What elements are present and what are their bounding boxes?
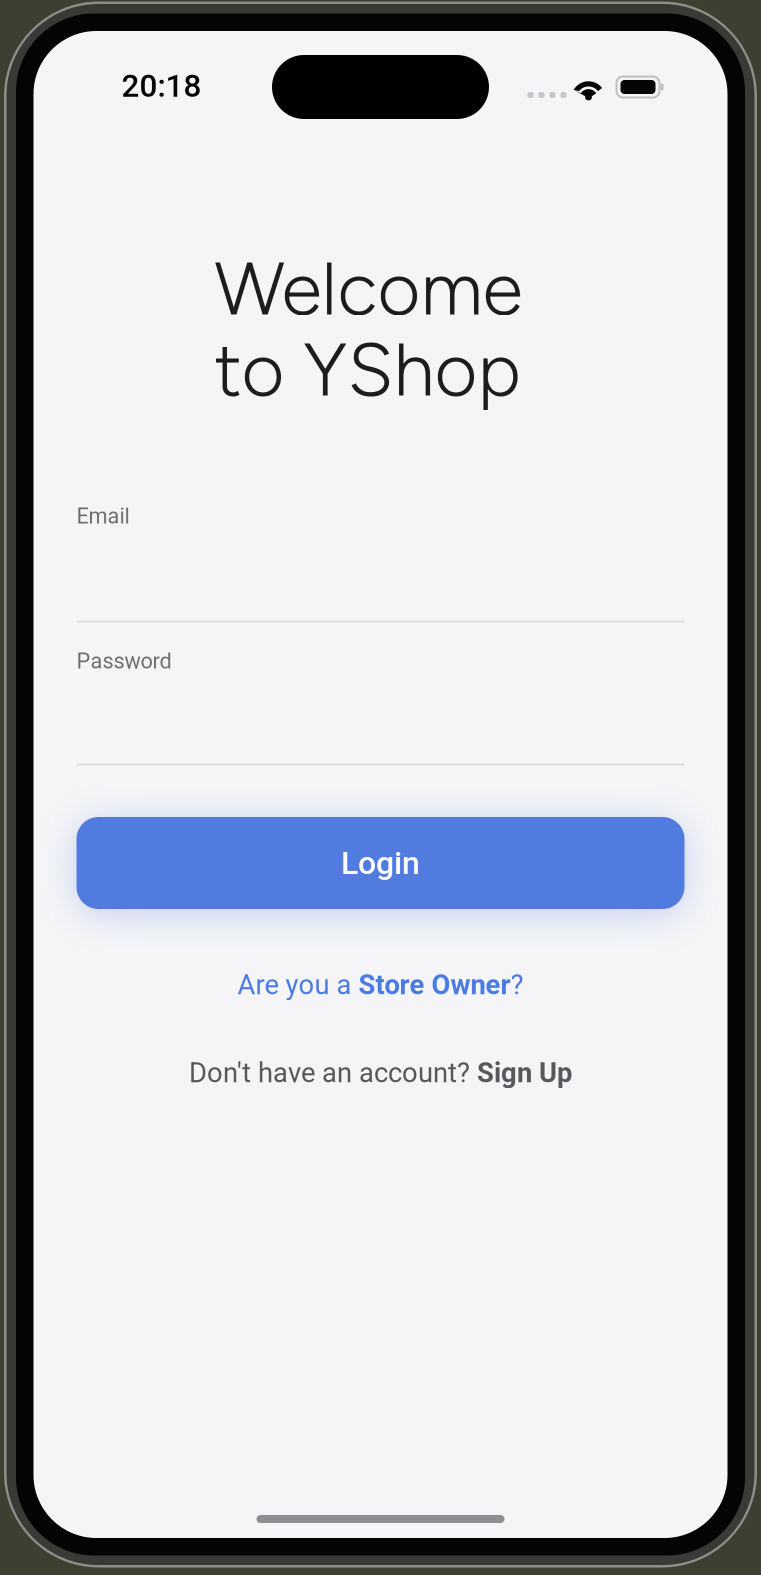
button[interactable]: Are you a	[237, 966, 523, 1004]
staticText: Sign Up	[477, 1057, 572, 1089]
staticText: Password	[76, 648, 171, 674]
staticText: Login	[341, 844, 420, 882]
staticText: Welcome	[214, 244, 522, 333]
staticText: to YShop	[214, 325, 520, 414]
button[interactable]: Login	[76, 817, 684, 909]
staticText: 20:18	[121, 68, 201, 104]
staticText: Email	[76, 503, 129, 529]
staticText: Don't have an account?	[189, 1057, 477, 1089]
button[interactable]: Don't have an account?	[189, 1054, 572, 1092]
staticText: Store Owner	[358, 969, 510, 1001]
staticText: ?	[510, 969, 523, 1001]
staticText: Are you a	[237, 969, 358, 1001]
